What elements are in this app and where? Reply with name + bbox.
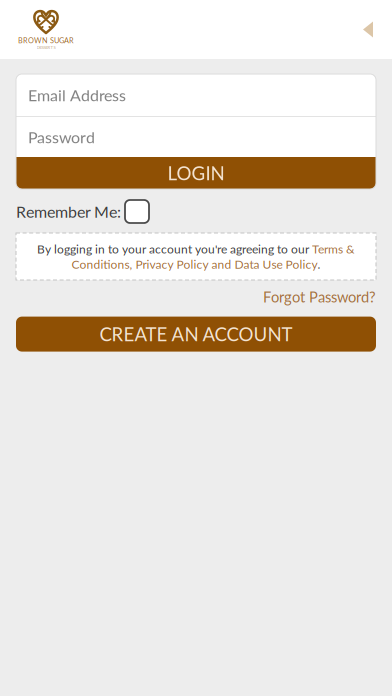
staticText: Forgot Password?: [263, 288, 376, 306]
staticText: .: [317, 257, 320, 271]
staticText: BROWN SUGAR: [18, 36, 74, 45]
staticText: Email Address: [28, 85, 126, 105]
button[interactable]: Back: [349, 9, 392, 49]
button[interactable]: Remember Me:: [16, 200, 149, 223]
button[interactable]: CREATE AN ACCOUNT: [16, 317, 376, 352]
button[interactable]: Conditions, Privacy Policy and Data Use …: [71, 257, 317, 271]
staticText: Terms &: [312, 242, 355, 256]
staticText: Conditions, Privacy Policy and Data Use …: [71, 257, 317, 271]
button[interactable]: LOGIN: [16, 157, 376, 189]
button[interactable]: Forgot Password?: [263, 288, 376, 306]
staticText: Remember Me:: [16, 202, 121, 221]
staticText: By logging in to your account you're agr…: [37, 242, 312, 256]
staticText: LOGIN: [167, 162, 224, 184]
button[interactable]: Terms &: [312, 242, 355, 256]
staticText: DESSERTS: [36, 45, 55, 50]
staticText: CREATE AN ACCOUNT: [99, 323, 292, 345]
staticText: Password: [28, 127, 95, 147]
